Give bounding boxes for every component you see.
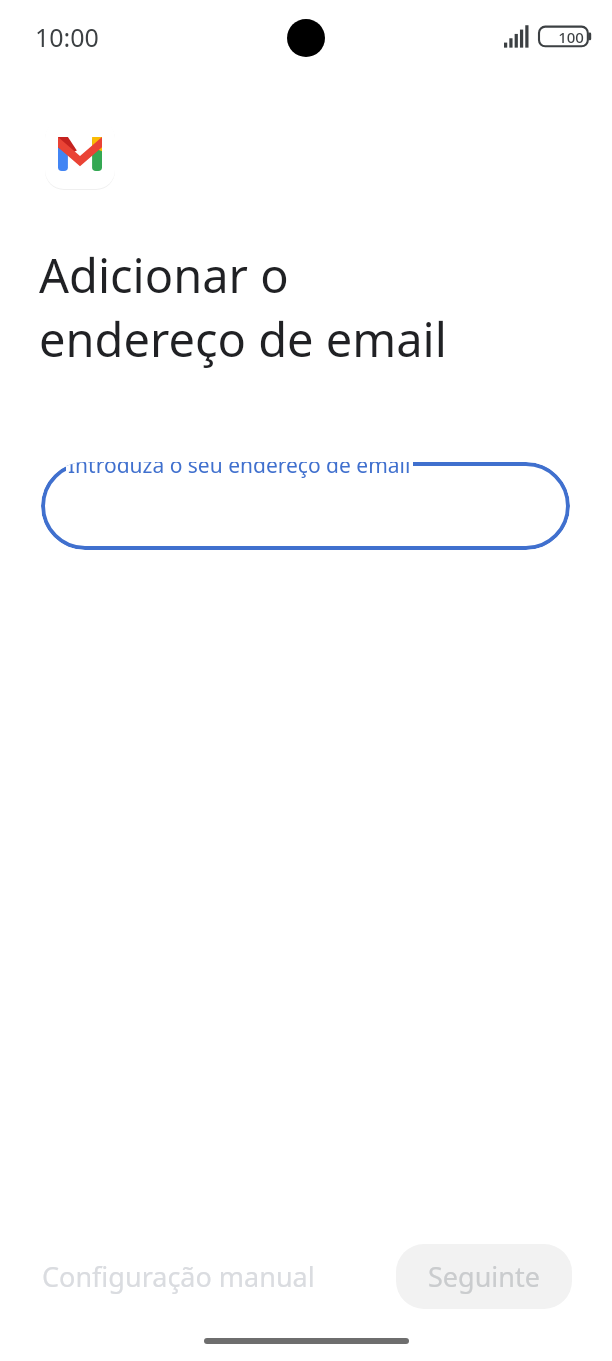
button[interactable]: Configuração manual	[26, 1246, 331, 1307]
button[interactable]: Seguinte	[396, 1244, 572, 1309]
staticText: Configuração manual	[42, 1258, 315, 1295]
staticText: Seguinte	[428, 1258, 540, 1295]
staticText: endereço de email	[39, 307, 447, 371]
staticText: Adicionar o	[39, 243, 289, 307]
button[interactable]: Introduza o seu endereço de email	[41, 462, 570, 550]
staticText: 100	[558, 27, 584, 47]
staticText: Introduza o seu endereço de email	[68, 462, 411, 480]
staticText: 10:00	[35, 20, 99, 54]
